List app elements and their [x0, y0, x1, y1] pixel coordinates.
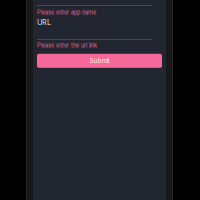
button[interactable]: Submit — [37, 54, 162, 68]
staticText: Please enter app name — [37, 9, 96, 16]
button[interactable]: URL — [37, 18, 152, 49]
staticText: Submit — [89, 57, 109, 64]
staticText: URL — [37, 18, 51, 27]
staticText: Please enter the url link — [37, 42, 97, 49]
button[interactable]: App name — [37, 5, 152, 16]
